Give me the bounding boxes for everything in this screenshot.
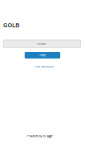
staticText: No posts. xyxy=(37,42,47,45)
staticText: GOLB xyxy=(3,22,19,28)
button[interactable]: Powered by Blogger xyxy=(27,135,53,138)
button[interactable]: Home xyxy=(25,52,60,58)
staticText: Powered by Blogger xyxy=(27,135,53,138)
staticText: Home xyxy=(39,54,45,57)
button[interactable]: View web version xyxy=(34,65,53,68)
staticText: View web version xyxy=(34,65,53,68)
